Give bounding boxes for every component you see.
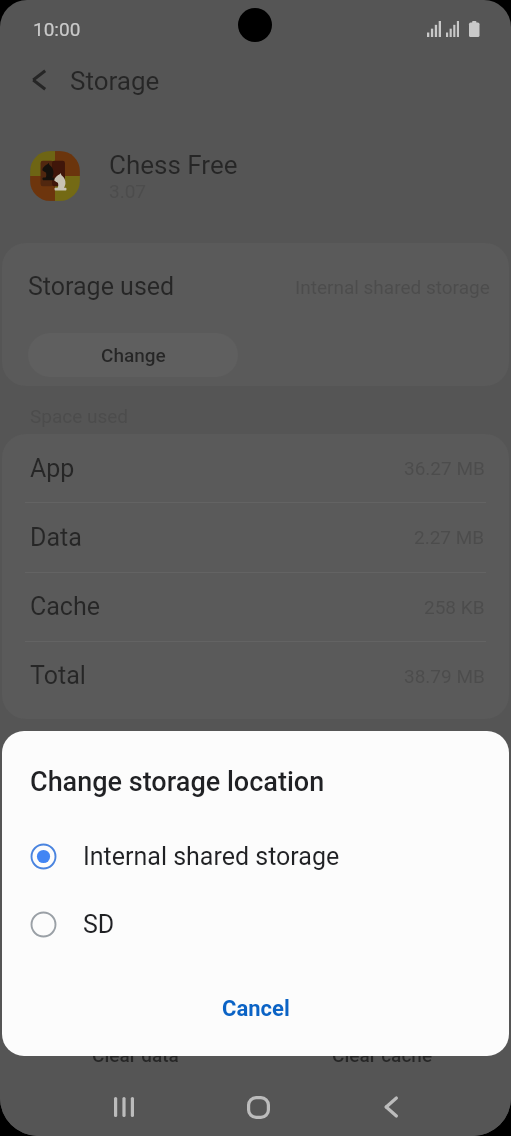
staticText: Storage [70, 66, 160, 96]
staticText: Cancel [222, 996, 290, 1022]
staticText: App [30, 454, 75, 483]
staticText: Internal shared storage [295, 276, 490, 298]
staticText: Internal shared storage [83, 842, 340, 871]
staticText: Storage used [28, 272, 175, 301]
button[interactable]: Clear data [63, 1031, 208, 1079]
button[interactable]: Recent apps [96, 1088, 152, 1126]
staticText: Total [30, 661, 86, 690]
staticText: Clear cache [332, 1044, 433, 1066]
button[interactable]: Change [28, 333, 238, 377]
staticText: Change [101, 344, 166, 366]
staticText: Chess Free [109, 150, 238, 180]
staticText: 36.27 MB [404, 457, 485, 479]
staticText: Clear data [92, 1044, 179, 1066]
staticText: Data [30, 523, 82, 552]
staticText: 258 KB [424, 596, 485, 618]
staticText: 2.27 MB [414, 526, 485, 548]
button[interactable]: Clear cache [310, 1031, 455, 1079]
button[interactable]: Internal shared storage [2, 832, 509, 880]
button[interactable]: SD [2, 900, 509, 948]
button[interactable]: Cancel [200, 984, 312, 1034]
button[interactable]: Home [230, 1088, 286, 1126]
button[interactable]: Total [2, 641, 509, 710]
button[interactable]: App [2, 434, 509, 502]
button[interactable]: Navigate up [16, 57, 62, 103]
staticText: Change storage location [30, 766, 325, 798]
staticText: 38.79 MB [404, 665, 485, 687]
button[interactable]: Cache [2, 572, 509, 641]
button[interactable]: Data [2, 502, 509, 572]
button[interactable]: Back [363, 1088, 419, 1126]
staticText: SD [83, 910, 115, 939]
staticText: Cache [30, 592, 100, 621]
staticText: Space used [30, 405, 129, 427]
staticText: 10:00 [33, 18, 81, 40]
